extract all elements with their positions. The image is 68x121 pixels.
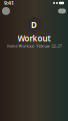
button[interactable]: Profile <box>2 7 10 15</box>
staticText: D <box>31 20 37 30</box>
staticText: Workout <box>17 33 50 44</box>
staticText: Home Workout · Februar 22–27 <box>6 43 61 49</box>
staticText: 9:41 <box>4 0 14 7</box>
button[interactable]: Pro <box>58 8 66 13</box>
